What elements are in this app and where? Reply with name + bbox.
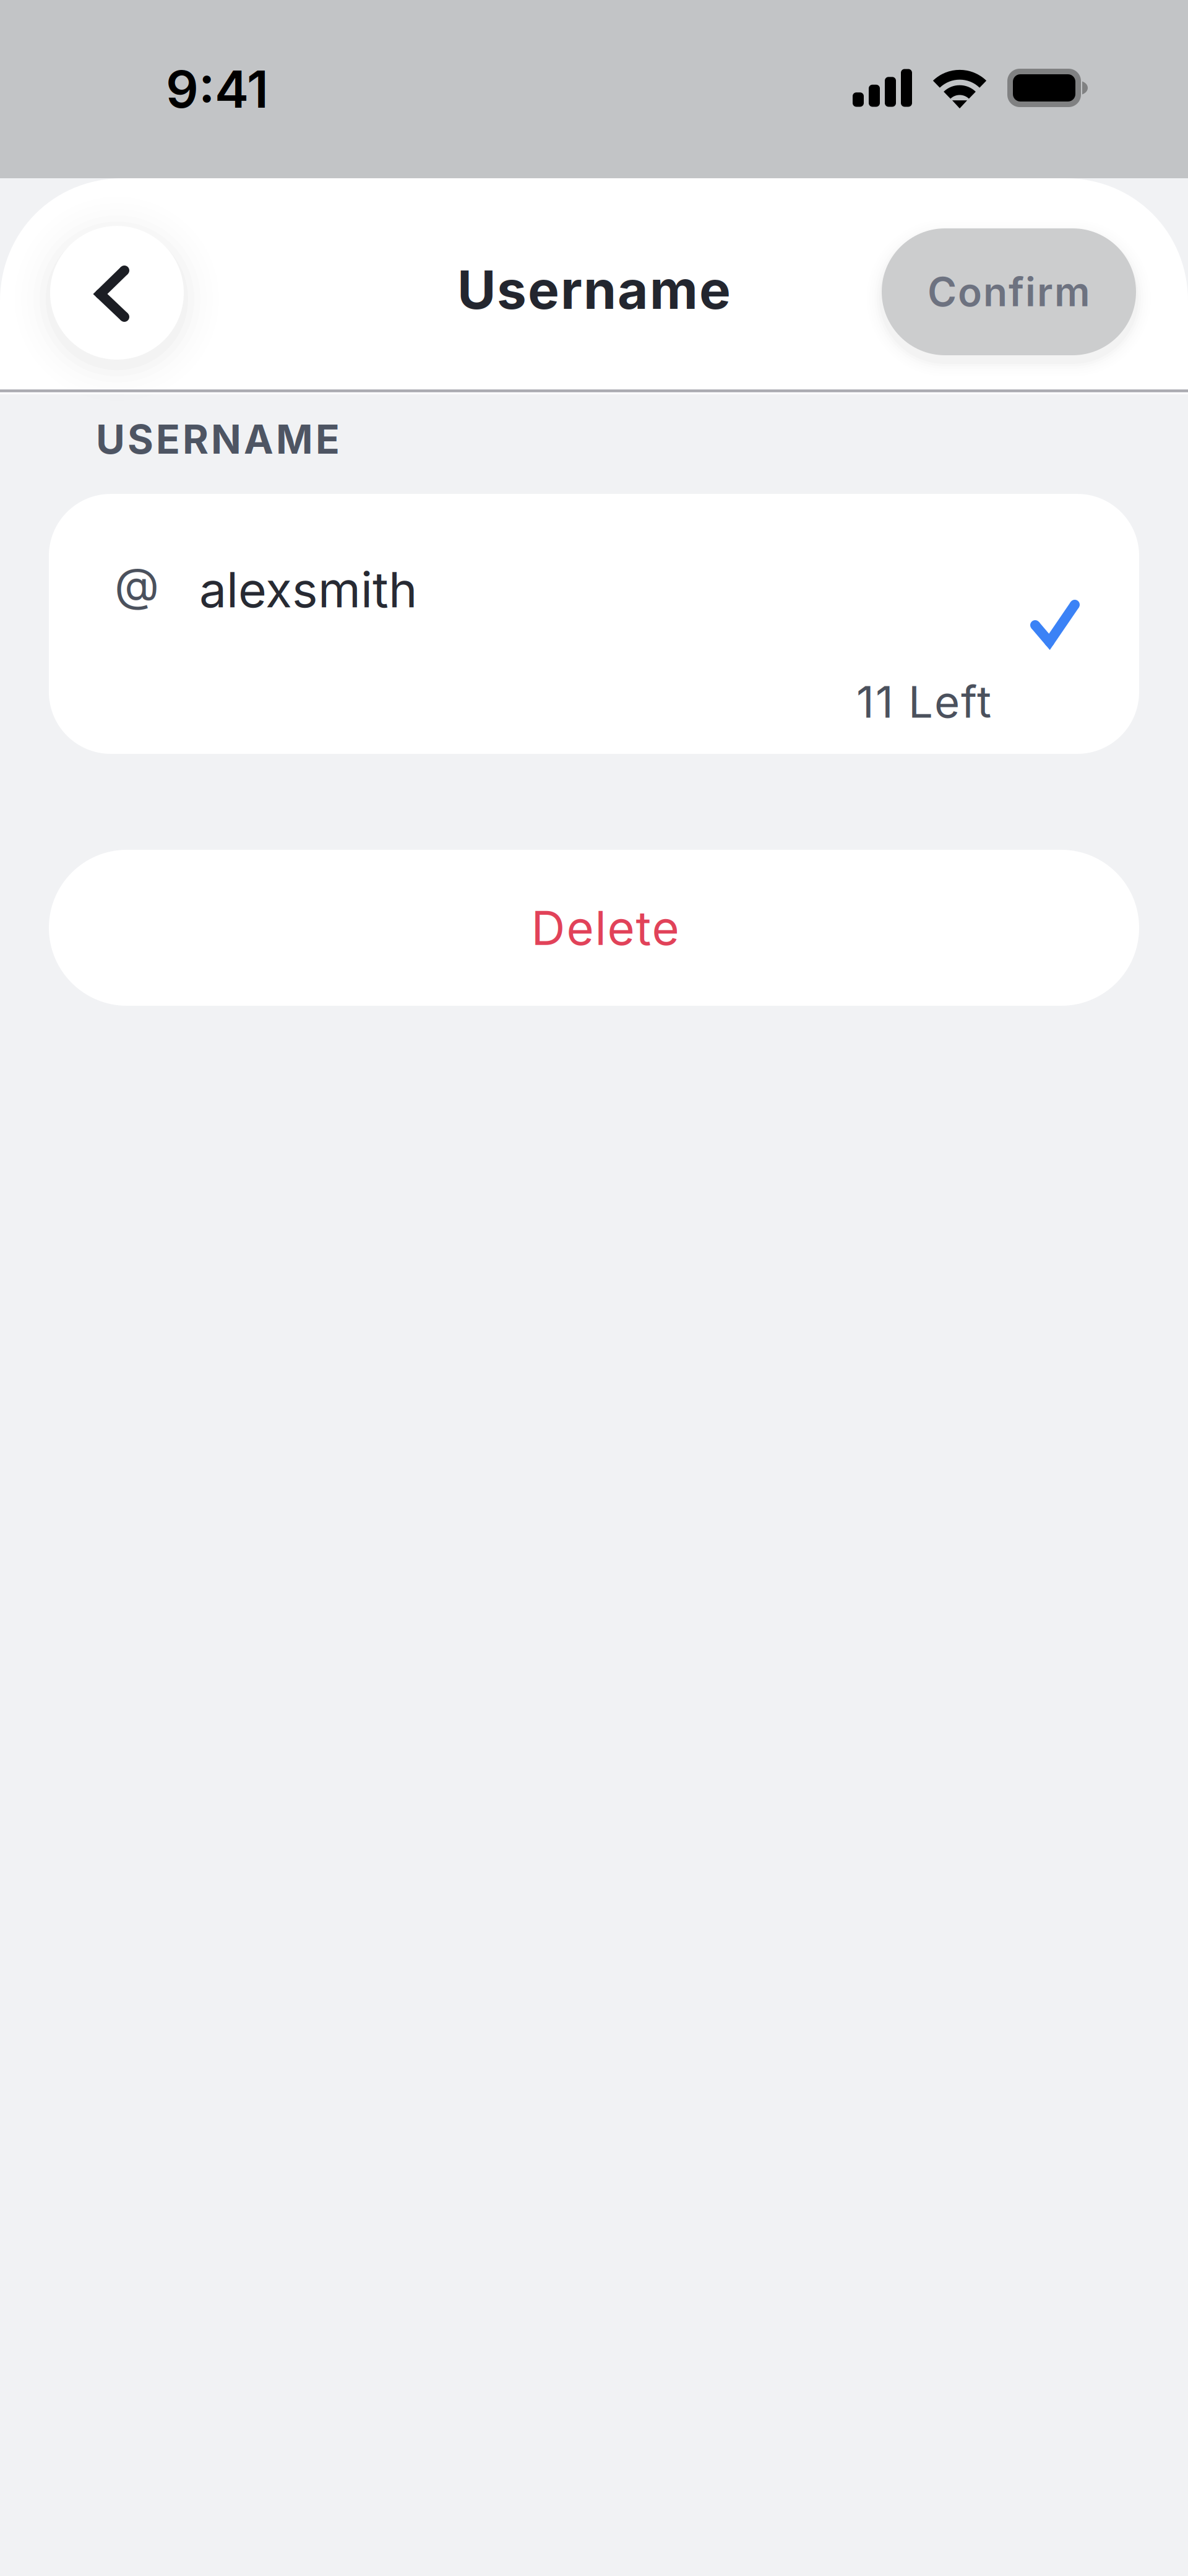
staticText: Delete bbox=[531, 899, 679, 956]
staticText: 9:41 bbox=[166, 58, 269, 120]
staticText: @ bbox=[114, 556, 159, 612]
button[interactable]: Back bbox=[50, 226, 184, 360]
staticText: Confirm bbox=[928, 268, 1090, 316]
staticText: 11 Left bbox=[856, 675, 991, 728]
staticText: USERNAME bbox=[96, 415, 340, 463]
button[interactable]: Delete bbox=[49, 850, 1139, 1006]
staticText: Username bbox=[457, 258, 731, 322]
staticText: alexsmith bbox=[199, 560, 418, 619]
button[interactable]: Confirm bbox=[882, 228, 1136, 355]
